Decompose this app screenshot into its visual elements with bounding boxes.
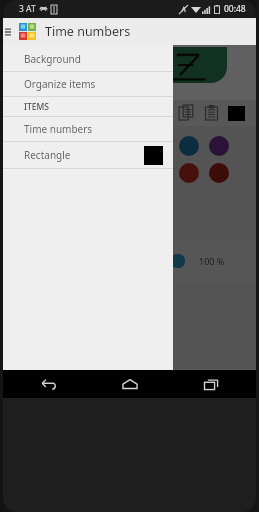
button[interactable] [179,136,199,156]
staticText: Rectangle [24,148,71,162]
button[interactable]: Time numbers [3,117,173,141]
button[interactable]: Open navigation drawer [3,18,12,45]
button[interactable]: Background [3,47,173,71]
button[interactable]: Rectangle [3,142,173,168]
staticText: Organize items [24,77,96,91]
staticText: Time numbers [45,23,131,40]
button[interactable]: Organize items [3,72,173,96]
staticText: 00:48 [224,3,246,15]
button[interactable] [209,136,229,156]
button[interactable]: Back [33,372,63,396]
staticText: 3 AT [19,3,36,15]
staticText: Background [24,52,81,66]
staticText: Time numbers [24,122,93,136]
staticText: 100 % [199,255,225,267]
button[interactable] [209,163,229,183]
staticText: ITEMS [24,101,49,113]
button[interactable]: Home [115,372,145,396]
button[interactable]: Recent apps [196,372,226,396]
button[interactable] [179,163,199,183]
